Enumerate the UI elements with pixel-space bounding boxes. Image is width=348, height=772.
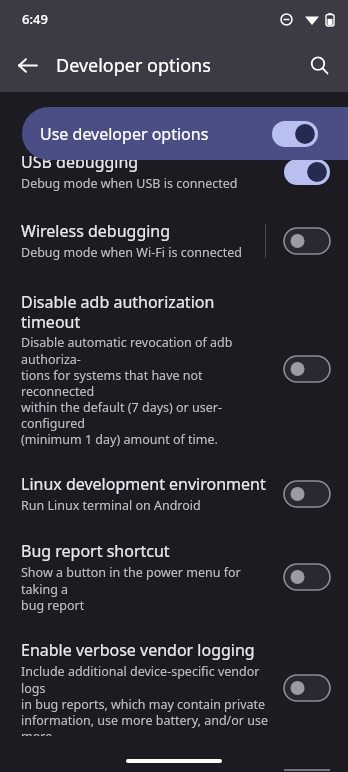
staticText: Show a button in the power menu for taki… — [21, 564, 268, 613]
button[interactable]: USB debugging — [0, 147, 348, 204]
button[interactable]: Bug report shortcut — [0, 528, 348, 627]
staticText: Bug report shortcut — [21, 540, 170, 562]
staticText: Use developer options — [40, 123, 272, 145]
button[interactable] — [272, 121, 318, 147]
button[interactable]: Use developer options — [22, 107, 348, 160]
button[interactable]: Back — [8, 46, 46, 84]
button[interactable] — [280, 671, 334, 705]
staticText: USB debugging — [21, 151, 139, 173]
staticText: Debug mode when Wi-Fi is connected — [21, 244, 242, 261]
staticText: Wireless debugging — [21, 220, 171, 242]
staticText: Developer options — [56, 53, 300, 78]
button[interactable]: Disable adb authorization timeout — [0, 277, 348, 461]
staticText: Enable verbose vendor logging — [21, 639, 255, 661]
staticText: Disable automatic revocation of adb auth… — [21, 334, 268, 447]
button[interactable]: Wireless debugging — [0, 204, 348, 277]
button[interactable] — [280, 560, 334, 594]
staticText: 6:49 — [22, 10, 48, 28]
button[interactable] — [280, 352, 334, 386]
button[interactable]: Enable verbose vendor logging — [0, 627, 348, 750]
staticText: Debug mode when USB is connected — [21, 175, 238, 192]
staticText: Run Linux terminal on Android — [21, 497, 201, 514]
staticText: Linux development environment — [21, 473, 266, 495]
staticText: Include additional device-specific vendo… — [21, 663, 268, 736]
button[interactable]: Search — [300, 46, 338, 84]
button[interactable] — [280, 477, 334, 511]
button[interactable] — [280, 224, 334, 258]
button[interactable]: Linux development environment — [0, 461, 348, 528]
button[interactable] — [280, 155, 334, 189]
staticText: Disable adb authorization timeout — [21, 291, 268, 332]
